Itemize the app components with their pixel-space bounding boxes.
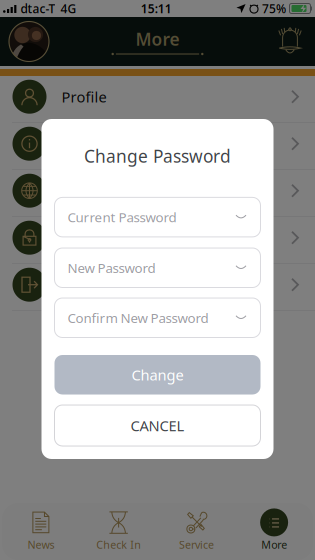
staticText: Profile	[61, 87, 106, 106]
button[interactable]: News	[2, 503, 80, 560]
staticText: CANCEL	[130, 416, 184, 435]
staticText: dtac-T	[20, 0, 55, 16]
staticText: Logout	[61, 275, 110, 294]
button[interactable]: Notifications	[278, 25, 302, 57]
staticText: Change Password	[61, 228, 184, 247]
button[interactable]: About Us	[0, 123, 315, 169]
staticText: 15:11	[141, 0, 172, 16]
button[interactable]: Service	[157, 503, 235, 560]
staticText: News	[27, 537, 54, 552]
staticText: Language	[61, 181, 129, 200]
button[interactable]: Check In	[80, 503, 158, 560]
staticText: 4G	[60, 0, 76, 16]
staticText: Check In	[96, 537, 141, 552]
button[interactable]: Profile	[0, 76, 315, 122]
staticText: Current Password	[67, 208, 176, 226]
button[interactable]: CANCEL	[54, 405, 260, 446]
button[interactable]: Change	[54, 355, 260, 394]
staticText: 75%	[262, 0, 286, 16]
button[interactable]: Profile photo	[9, 21, 49, 61]
button[interactable]: Logout	[0, 264, 315, 310]
staticText: Confirm New Password	[67, 309, 208, 327]
button[interactable]: Change Password	[0, 217, 315, 263]
button[interactable]: Language	[0, 170, 315, 216]
staticText: More	[135, 27, 179, 50]
staticText: Change Password	[84, 144, 231, 167]
button[interactable]: More	[235, 503, 313, 560]
staticText: New Password	[67, 259, 155, 277]
staticText: Change	[131, 365, 183, 384]
staticText: Service	[179, 537, 214, 552]
staticText: About Us	[61, 134, 124, 153]
staticText: More	[261, 537, 287, 552]
